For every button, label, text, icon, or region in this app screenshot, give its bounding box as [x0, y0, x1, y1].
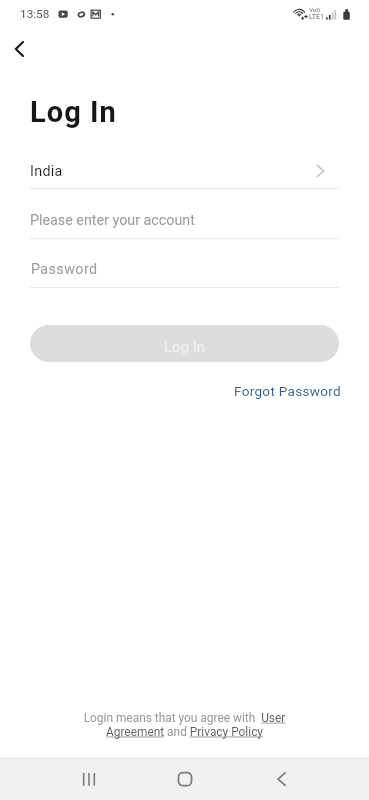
button[interactable]: Log In — [30, 325, 339, 362]
button[interactable]: Home — [160, 757, 208, 800]
button[interactable]: Forgot Password — [234, 383, 342, 399]
staticText: LTE1 — [309, 13, 324, 21]
button[interactable]: Please enter your account — [30, 204, 339, 236]
button[interactable]: Recent apps — [65, 757, 113, 800]
staticText: Forgot Password — [234, 383, 342, 399]
button[interactable]: India — [30, 159, 332, 184]
button[interactable]: Back — [7, 37, 32, 62]
button[interactable]: Back — [257, 757, 305, 800]
staticText: Please enter your account — [30, 212, 195, 229]
staticText: VoI) — [309, 6, 321, 13]
button[interactable]: Password — [30, 253, 339, 285]
staticText: 13:58 — [20, 7, 50, 21]
staticText: India — [30, 163, 63, 180]
staticText: Log In — [164, 338, 206, 356]
staticText: Log In — [30, 95, 117, 129]
staticText: Login means that you agree with User Agr… — [80, 711, 289, 739]
staticText: Password — [31, 261, 98, 278]
